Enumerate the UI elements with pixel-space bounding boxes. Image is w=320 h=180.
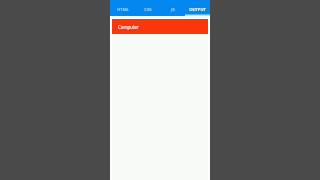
staticText: JS (171, 7, 175, 13)
staticText: Computer (118, 24, 139, 30)
button[interactable]: HTML (110, 0, 135, 16)
staticText: HTML (117, 7, 129, 13)
button[interactable]: CSS (135, 0, 160, 16)
button[interactable]: OUTPUT (185, 0, 210, 16)
staticText: CSS (144, 7, 152, 13)
button[interactable]: Computer status banner (112, 19, 208, 34)
button[interactable]: JS (160, 0, 185, 16)
staticText: OUTPUT (189, 7, 206, 13)
